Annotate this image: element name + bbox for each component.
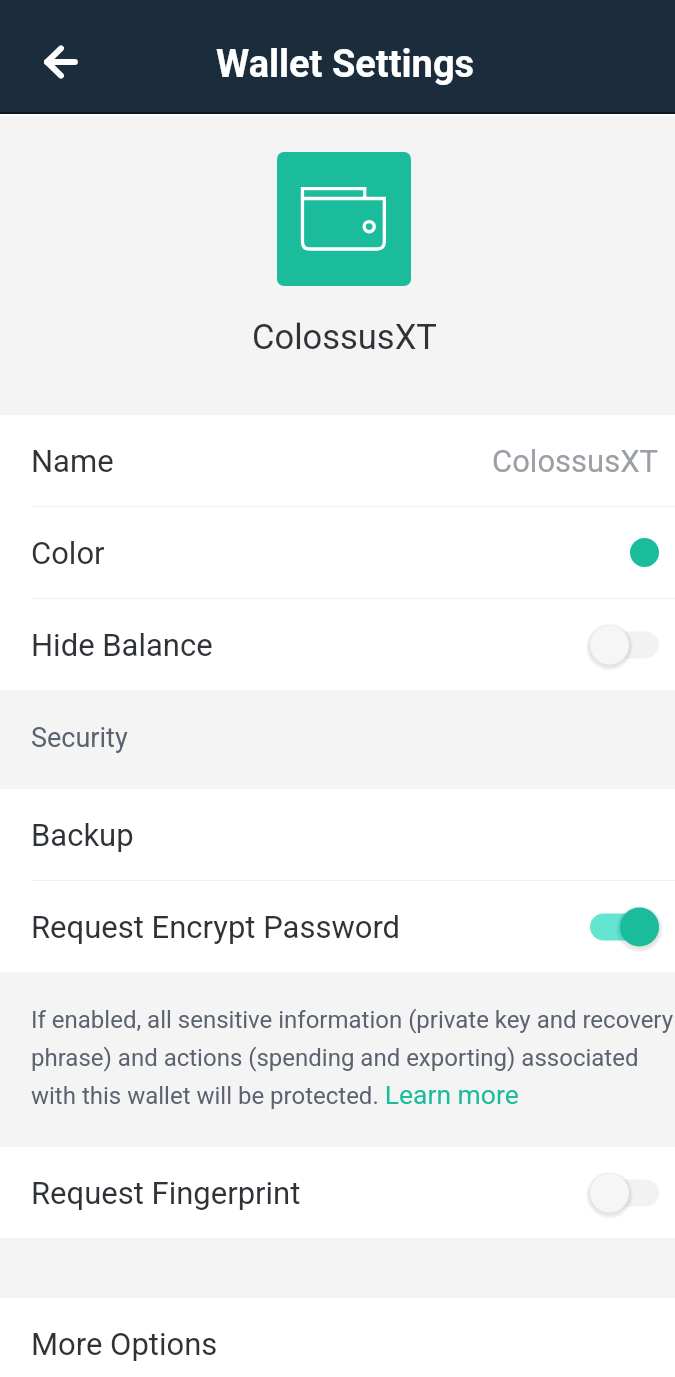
staticText: Hide Balance xyxy=(31,627,213,663)
button[interactable]: Wallet avatar xyxy=(277,152,411,286)
button[interactable]: Name xyxy=(0,415,675,506)
staticText: More Options xyxy=(31,1326,218,1362)
button[interactable]: Request Fingerprint xyxy=(0,1147,675,1238)
button[interactable]: Hide Balance xyxy=(0,599,675,690)
button[interactable]: Backup xyxy=(0,789,675,880)
button[interactable]: Toggle on xyxy=(575,897,659,957)
staticText: Request Encrypt Password xyxy=(31,909,401,945)
button[interactable]: More Options xyxy=(0,1298,675,1377)
button[interactable]: Color xyxy=(0,507,675,598)
staticText: Request Fingerprint xyxy=(31,1175,301,1211)
button[interactable]: Request Encrypt Password xyxy=(0,881,675,972)
staticText: Backup xyxy=(31,817,134,853)
staticText: If enabled, all sensitive information (p… xyxy=(31,1006,674,1111)
button[interactable]: Toggle off xyxy=(575,615,659,675)
staticText: Name xyxy=(31,443,114,479)
staticText: ColossusXT xyxy=(492,443,659,479)
staticText: Security xyxy=(31,722,128,754)
button[interactable]: Toggle off xyxy=(575,1163,659,1223)
button[interactable]: Back xyxy=(27,28,95,96)
staticText: Color xyxy=(31,535,105,571)
staticText: Wallet Settings xyxy=(216,42,475,87)
staticText: ColossusXT xyxy=(252,317,437,357)
